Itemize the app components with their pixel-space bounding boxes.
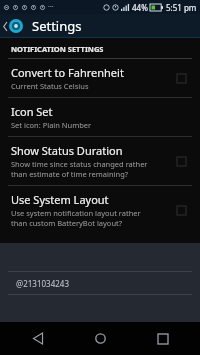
button[interactable]: Navigate up: [0, 14, 26, 37]
staticText: Convert to Fahrenheit: [11, 65, 124, 80]
button[interactable]: Use System Layout: [0, 186, 200, 234]
staticText: NOTIFICATION SETTINGS: [11, 44, 104, 54]
button[interactable]: Back: [13, 322, 63, 355]
staticText: Settings: [32, 17, 82, 35]
staticText: than estimate of time remaining?: [11, 169, 129, 179]
button[interactable]: Recent apps: [138, 322, 188, 355]
button[interactable]: Home: [75, 322, 125, 355]
staticText: Set icon: Plain Number: [11, 120, 92, 130]
button[interactable]: Show Status Duration: [0, 137, 200, 185]
staticText: Show time since status changed rather: [11, 159, 148, 169]
staticText: 44%: [132, 2, 148, 13]
staticText: 5:51 pm: [166, 2, 197, 13]
staticText: ···: [48, 2, 54, 12]
staticText: Use System Layout: [11, 192, 109, 207]
staticText: than custom BatteryBot layout?: [11, 218, 122, 228]
staticText: Current Status Celsius: [11, 81, 89, 91]
button[interactable]: Convert to Fahrenheit: [0, 59, 200, 97]
staticText: @2131034243: [16, 278, 69, 289]
staticText: Show Status Duration: [11, 143, 123, 158]
staticText: Use system notification layout rather: [11, 208, 141, 218]
button[interactable]: Icon Set: [0, 98, 200, 136]
staticText: Icon Set: [11, 104, 53, 119]
